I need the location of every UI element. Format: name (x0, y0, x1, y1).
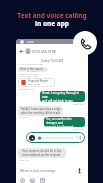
staticText: PDF 1.2 MB (28, 83, 41, 86)
staticText: Today 10:24 AM (41, 59, 64, 63)
button[interactable]: Financial Report (18, 78, 55, 87)
staticText: +1 (312) 555-0198 • SMS (19, 63, 44, 66)
staticText: Here is the report you asked for. (20, 67, 46, 72)
button[interactable]: Call (73, 31, 97, 55)
button[interactable]: Attachment option 3 (40, 178, 45, 183)
button[interactable]: Play voice message (26, 132, 85, 143)
button[interactable]: Your revenue should be in the same ballp… (18, 148, 66, 158)
staticText: 10:31 AM (19, 159, 29, 162)
button[interactable]: Yes, we confirm the changes and request … (44, 117, 85, 127)
staticText: 10:28 AM (19, 116, 29, 119)
button[interactable]: Really? I was expecting a reply after th… (18, 106, 63, 116)
staticText: (312)-555-0198 (32, 49, 56, 54)
button[interactable]: Back (19, 49, 24, 54)
staticText: Great. I am going through it now and wil… (42, 91, 83, 102)
button[interactable]: Record voice message (77, 168, 82, 173)
staticText: Financial Report (28, 79, 49, 83)
staticText: 1:38 (76, 136, 82, 140)
staticText: 10:30 AM ✓ (73, 128, 85, 131)
staticText: Attachment • 1 file (19, 75, 38, 78)
staticText: Write a text message (20, 168, 56, 173)
button[interactable]: Attachment option 2 (30, 178, 35, 183)
staticText: Text and voice calling (17, 11, 87, 20)
staticText: in one app (35, 19, 69, 28)
staticText: Your revenue should be in the same ballp… (22, 149, 62, 157)
staticText: Yes, we confirm the changes and request … (46, 117, 83, 127)
staticText: 10:27 AM ✓ (73, 103, 85, 106)
button[interactable]: Here is the report you asked for. (18, 67, 48, 72)
button[interactable]: Attachment option 1 (20, 178, 25, 183)
staticText: Sent 10:25 AM (19, 88, 34, 91)
staticText: Delivered 10:24 AM (19, 73, 39, 76)
staticText: Really? I was expecting a reply after th… (21, 107, 61, 115)
button[interactable]: Great. I am going through it now and wil… (40, 91, 85, 102)
